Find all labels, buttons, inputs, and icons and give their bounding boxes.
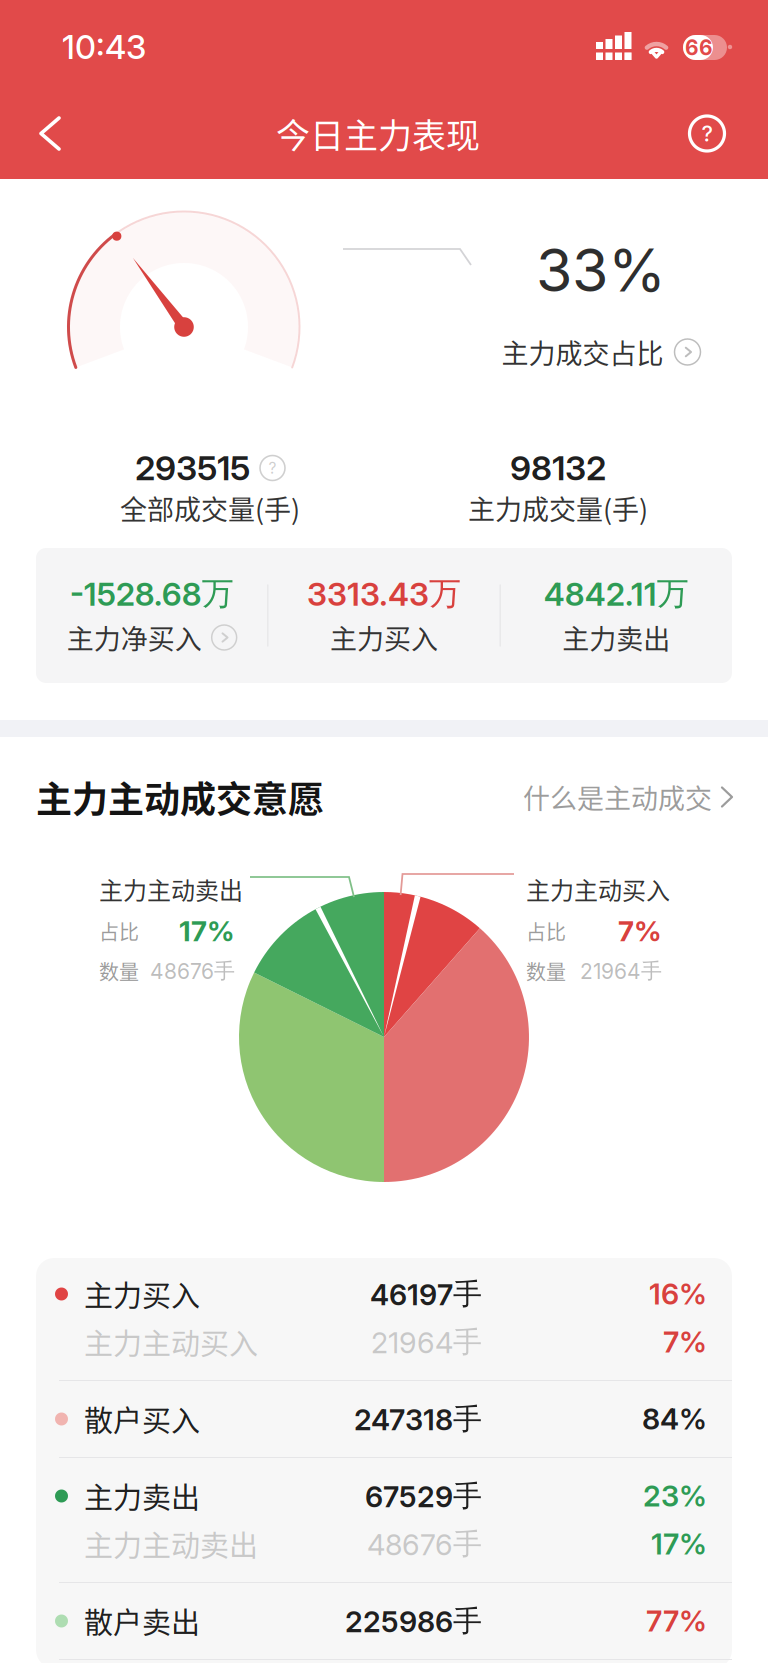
staticText: 21964手 — [371, 1324, 482, 1360]
staticText: 77% — [646, 1603, 707, 1639]
staticText: 16% — [649, 1276, 707, 1312]
staticText: 今日主力表现 — [276, 109, 480, 158]
staticText: 4842.11万 — [544, 573, 689, 614]
staticText: 主力买入 — [330, 618, 438, 657]
staticText: 主力成交占比 — [501, 332, 663, 372]
staticText: 17% — [179, 914, 235, 948]
staticText: ? — [268, 459, 276, 477]
staticText: 主力主动成交意愿 — [36, 771, 324, 823]
button[interactable]: Back — [6, 88, 94, 179]
staticText: 主力主动买入 — [84, 1321, 258, 1363]
button[interactable]: 主力净买入 — [67, 615, 237, 659]
button[interactable]: Help — [663, 88, 751, 179]
staticText: 21964手 — [580, 958, 662, 984]
button[interactable]: 主力成交占比 — [501, 325, 700, 379]
staticText: 散户买入 — [84, 1398, 200, 1440]
staticText: 67529手 — [365, 1478, 482, 1514]
staticText: 247318手 — [354, 1401, 482, 1437]
staticText: 主力主动卖出 — [84, 1523, 258, 1565]
staticText: 46197手 — [370, 1276, 482, 1312]
button[interactable]: 什么是主动成交 — [523, 769, 732, 825]
staticText: 占比 — [526, 916, 566, 945]
staticText: 主力主动卖出 — [99, 872, 243, 906]
staticText: ? — [701, 120, 712, 147]
staticText: 33% — [536, 234, 666, 306]
staticText: 17% — [651, 1526, 707, 1562]
staticText: 什么是主动成交 — [523, 777, 712, 817]
staticText: 数量 — [526, 956, 566, 985]
staticText: 主力成交量(手) — [468, 488, 648, 528]
staticText: 48676手 — [367, 1526, 482, 1562]
staticText: 7% — [663, 1324, 707, 1360]
staticText: 66 — [685, 35, 713, 60]
staticText: 10:43 — [62, 27, 146, 67]
staticText: 7% — [618, 914, 662, 948]
staticText: 主力卖出 — [84, 1475, 200, 1517]
staticText: 主力买入 — [84, 1273, 200, 1315]
staticText: 主力卖出 — [562, 618, 670, 657]
staticText: 23% — [643, 1478, 707, 1514]
staticText: 98132 — [510, 447, 606, 488]
staticText: 225986手 — [345, 1603, 482, 1639]
staticText: 主力主动买入 — [526, 872, 670, 906]
staticText: 数量 — [99, 956, 139, 985]
staticText: 293515 — [135, 447, 250, 488]
staticText: 散户卖出 — [84, 1600, 200, 1642]
staticText: 3313.43万 — [307, 573, 461, 614]
staticText: 全部成交量(手) — [120, 488, 300, 528]
staticText: -1528.68万 — [70, 573, 234, 614]
staticText: 主力净买入 — [67, 618, 202, 657]
staticText: 48676手 — [150, 958, 235, 984]
staticText: 占比 — [99, 916, 139, 945]
staticText: 84% — [642, 1401, 707, 1437]
